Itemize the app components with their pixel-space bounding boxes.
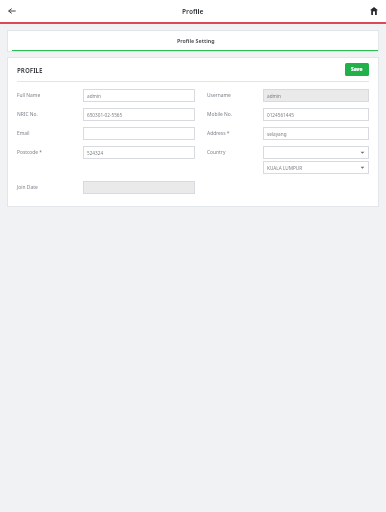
staticText: PROFILE (17, 66, 43, 74)
staticText: admin (267, 93, 282, 99)
staticText: Profile (182, 7, 204, 16)
staticText: Email (17, 130, 30, 137)
staticText: KUALA LUMPUR (267, 165, 303, 171)
button[interactable]: 524324 (83, 146, 195, 159)
staticText: selayang (267, 131, 287, 137)
staticText: Join Date (17, 184, 38, 191)
button[interactable] (83, 127, 195, 140)
button[interactable]: 0124561445 (263, 108, 369, 121)
staticText: Postcode * (17, 149, 43, 156)
staticText: Save (351, 66, 363, 73)
staticText: Mobile No. (207, 111, 232, 118)
staticText: 650301-02-5565 (87, 112, 123, 118)
button[interactable]: selayang (263, 127, 369, 140)
button[interactable]: Home (366, 3, 382, 19)
staticText: Profile Setting (177, 37, 215, 44)
staticText: Address * (207, 130, 230, 137)
button[interactable] (263, 146, 369, 159)
staticText: NRIC No. (17, 111, 38, 118)
button[interactable]: Back (3, 2, 21, 20)
staticText: Country (207, 149, 226, 156)
button[interactable]: KUALA LUMPUR (263, 161, 369, 174)
button[interactable]: admin (263, 89, 369, 102)
button[interactable]: admin (83, 89, 195, 102)
button[interactable] (83, 181, 195, 194)
staticText: Full Name (17, 92, 41, 99)
button[interactable]: Save (345, 63, 369, 76)
staticText: 0124561445 (267, 112, 294, 118)
staticText: 524324 (87, 150, 104, 156)
button[interactable]: 650301-02-5565 (83, 108, 195, 121)
staticText: Username (207, 92, 231, 99)
button[interactable]: Profile Setting (12, 30, 379, 52)
staticText: admin (87, 93, 102, 99)
